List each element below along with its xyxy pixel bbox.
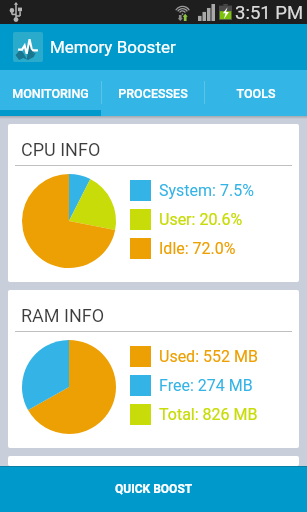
button[interactable]: Memory Booster icon <box>13 32 43 62</box>
staticText: Free: 274 MB <box>159 376 253 395</box>
staticText: 3:51 PM <box>235 2 304 24</box>
staticText: Total: 826 MB <box>159 405 258 424</box>
staticText: User: 20.6% <box>159 210 243 229</box>
staticText: TOOLS <box>236 86 276 101</box>
staticText: Used: 552 MB <box>159 347 258 366</box>
other: USB connected <box>10 2 22 22</box>
staticText: PROCESSES <box>118 86 188 101</box>
staticText: CPU INFO <box>21 139 101 160</box>
staticText: QUICK BOOST <box>115 482 193 496</box>
button[interactable]: RAM INFO <box>8 290 299 448</box>
button[interactable]: QUICK BOOST <box>0 466 307 512</box>
staticText: Memory Booster <box>50 37 176 57</box>
button[interactable]: TOOLS <box>205 70 307 116</box>
staticText: MONITORING <box>12 86 89 101</box>
button[interactable]: CPU INFO <box>8 124 299 282</box>
staticText: RAM INFO <box>21 305 105 326</box>
button[interactable]: MONITORING <box>0 70 101 116</box>
button[interactable]: PROCESSES <box>102 70 204 116</box>
staticText: Idle: 72.0% <box>159 239 236 258</box>
staticText: System: 7.5% <box>159 181 254 200</box>
